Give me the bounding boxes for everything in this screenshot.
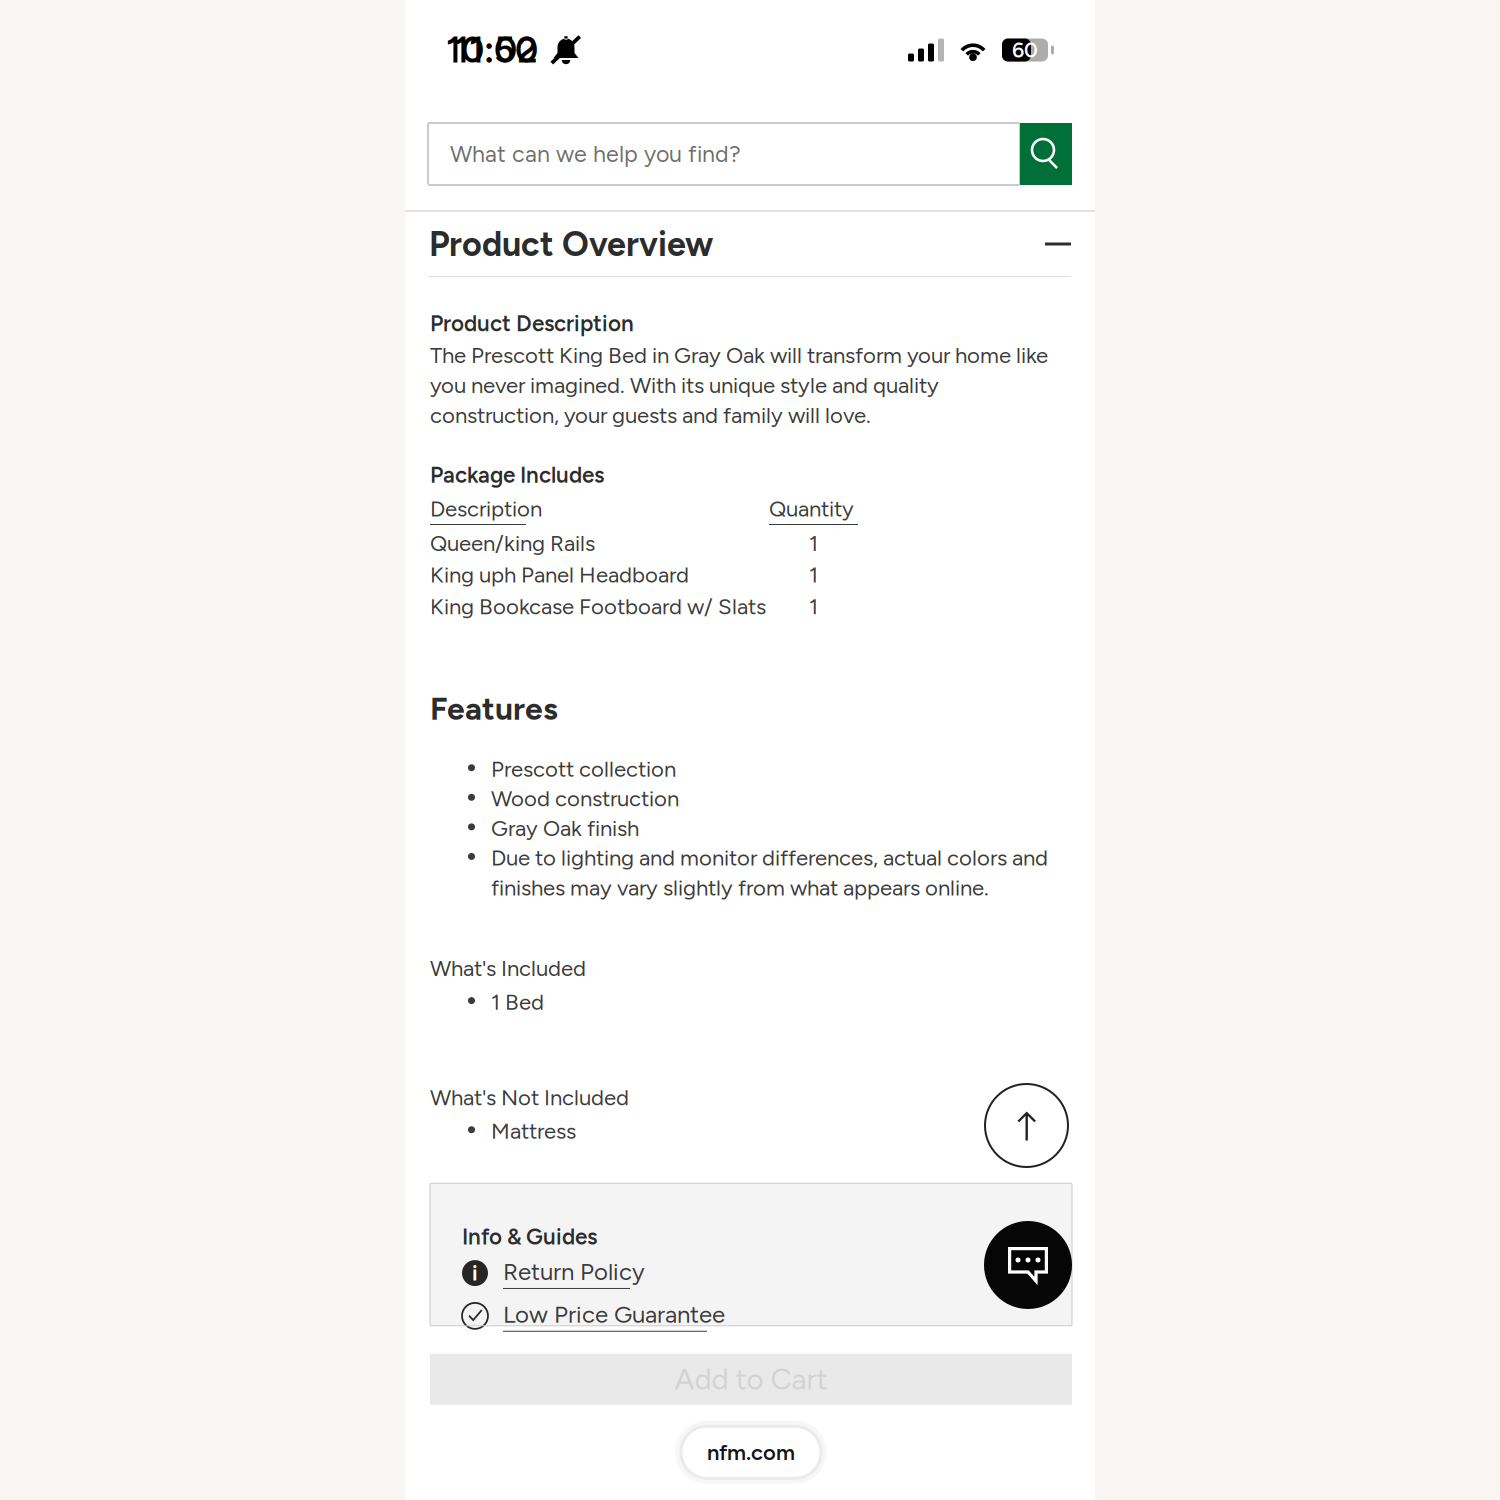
staticText: Gray Oak finish bbox=[491, 815, 639, 841]
staticText: 1 Bed bbox=[491, 989, 544, 1015]
button[interactable]: Search bbox=[1020, 123, 1072, 185]
staticText: Features bbox=[430, 690, 558, 728]
button[interactable]: What can we help you find? bbox=[428, 123, 1020, 185]
staticText: Queen/king Rails bbox=[430, 530, 595, 557]
staticText: 11:02 bbox=[454, 28, 538, 72]
staticText: Wood construction bbox=[491, 785, 679, 812]
staticText: What's Included bbox=[430, 955, 586, 982]
staticText: Add to Cart bbox=[674, 1362, 827, 1397]
staticText: Quantity bbox=[769, 495, 854, 522]
staticText: Due to lighting and monitor differences,… bbox=[491, 844, 1048, 901]
staticText: Return Policy bbox=[503, 1257, 645, 1286]
staticText: 1 bbox=[809, 530, 818, 557]
staticText: 60 bbox=[1012, 37, 1038, 63]
button[interactable]: Back to top bbox=[985, 1084, 1068, 1167]
staticText: What's Not Included bbox=[430, 1084, 629, 1111]
staticText: Product Overview bbox=[429, 224, 713, 264]
staticText: nfm.com bbox=[707, 1439, 795, 1465]
staticText: Package Includes bbox=[430, 462, 604, 488]
button[interactable]: Product Overview bbox=[405, 212, 1095, 276]
staticText: King uph Panel Headboard bbox=[430, 562, 689, 588]
staticText: King Bookcase Footboard w/ Slats bbox=[430, 593, 766, 620]
staticText: Description bbox=[430, 495, 542, 522]
staticText: 1 bbox=[809, 593, 818, 620]
staticText: 1 bbox=[809, 562, 818, 588]
staticText: 10:50 bbox=[446, 28, 538, 72]
staticText: Info & Guides bbox=[462, 1223, 597, 1250]
button[interactable]: Add to Cart bbox=[430, 1354, 1072, 1405]
staticText: Prescott collection bbox=[491, 756, 676, 782]
button[interactable]: Chat bbox=[984, 1221, 1072, 1309]
button[interactable]: nfm.com bbox=[675, 1421, 826, 1484]
staticText: Low Price Guarantee bbox=[503, 1300, 725, 1329]
staticText: Product Description bbox=[430, 310, 634, 337]
staticText: i bbox=[472, 1260, 478, 1286]
staticText: Mattress bbox=[491, 1118, 576, 1144]
staticText: The Prescott King Bed in Gray Oak will t… bbox=[430, 342, 1048, 429]
button[interactable]: Low Price Guarantee bbox=[462, 1300, 1042, 1332]
staticText: What can we help you find? bbox=[450, 140, 741, 168]
button[interactable]: i bbox=[462, 1257, 1042, 1289]
